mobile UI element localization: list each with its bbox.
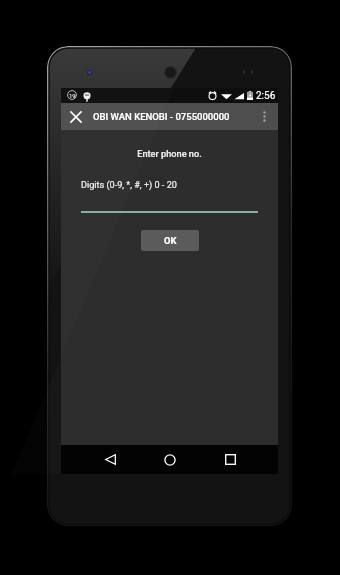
button[interactable]: Recents: [212, 445, 248, 474]
button[interactable]: More options: [257, 103, 272, 130]
staticText: OK: [164, 235, 177, 246]
button[interactable]: Home: [152, 445, 188, 474]
staticText: OBI WAN KENOBI - 0755000000: [93, 111, 230, 122]
button[interactable]: OK: [141, 230, 199, 251]
staticText: 19: [69, 92, 76, 99]
staticText: Digits (0-9, *, #, +) 0 - 20: [81, 180, 177, 191]
staticText: 2:56: [256, 90, 276, 102]
button[interactable]: Back: [92, 445, 128, 474]
button[interactable]: Close: [63, 103, 89, 130]
staticText: Enter phone no.: [61, 148, 278, 159]
